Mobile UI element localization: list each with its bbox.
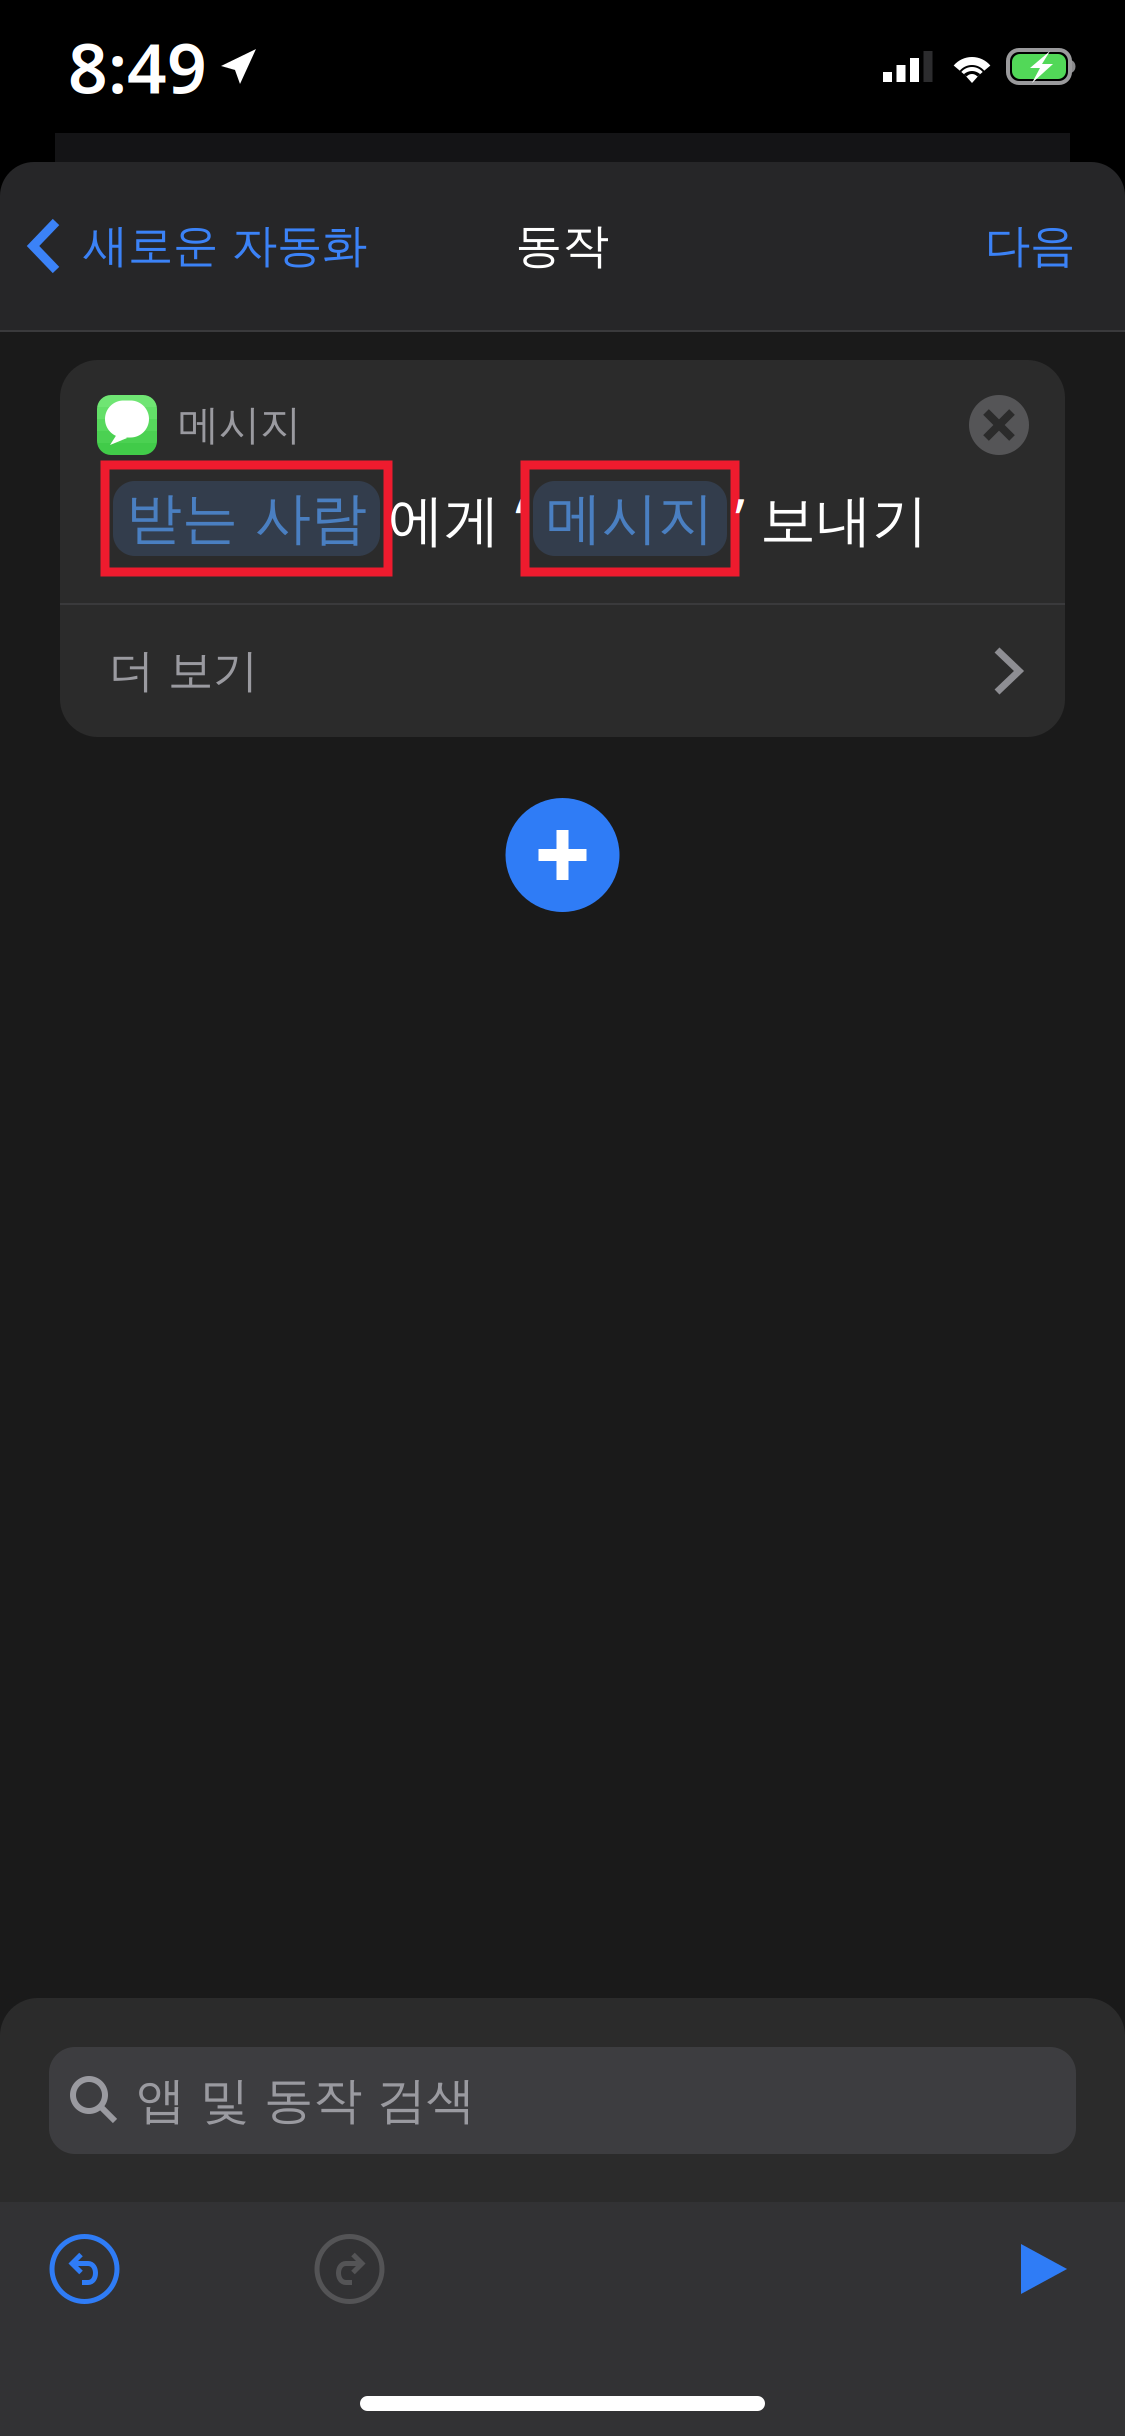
staticText: 앱 및 동작 검색 [136, 2070, 475, 2131]
button[interactable]: 동작 추가 [505, 798, 619, 912]
staticText: 8:49 [68, 20, 207, 113]
staticText: 메시지 [178, 400, 301, 450]
button[interactable]: 실행 취소 [0, 2236, 169, 2301]
button[interactable]: 새로운 자동화 [0, 198, 367, 294]
staticText: 받는 사람 [126, 484, 367, 553]
staticText: ’ 보내기 [735, 481, 928, 556]
button[interactable]: 더 보기 [60, 605, 1065, 737]
staticText: 새로운 자동화 [83, 218, 367, 274]
button[interactable]: 앱 및 동작 검색 [49, 2047, 1076, 2154]
button[interactable]: 다음 [985, 198, 1125, 294]
staticText: 다음 [985, 218, 1075, 274]
staticText: 동작 [515, 217, 609, 275]
button[interactable]: 실행 [979, 2242, 1125, 2296]
staticText: 메시지 [546, 484, 714, 553]
button[interactable]: 다시 실행 [169, 2236, 430, 2301]
staticText: 더 보기 [109, 643, 258, 699]
staticText: 에게 ‘ [388, 481, 525, 556]
button[interactable]: 동작 삭제 [969, 395, 1029, 455]
